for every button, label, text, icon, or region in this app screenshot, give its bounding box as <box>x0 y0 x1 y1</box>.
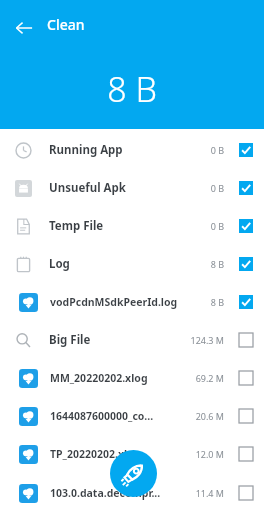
button[interactable]: vodPcdnMSdkPeerId.log <box>0 283 264 321</box>
staticText: 124.3 M <box>190 334 224 346</box>
button[interactable]: Unsueful Apk <box>0 169 264 207</box>
staticText: Temp File <box>49 218 206 234</box>
staticText: 12.0 M <box>195 448 224 460</box>
button[interactable]: Big File <box>0 321 264 359</box>
staticText: 11.4 M <box>195 487 224 499</box>
staticText: 69.2 M <box>195 372 224 384</box>
button[interactable]: Not selected <box>234 404 258 428</box>
button[interactable]: Selected <box>234 290 258 314</box>
button[interactable]: Clean now <box>110 450 157 497</box>
button[interactable]: Selected <box>234 138 258 162</box>
button[interactable]: 103.0.data.decompr... <box>0 473 264 512</box>
button[interactable]: Back <box>8 12 40 44</box>
button[interactable]: Running App <box>0 131 264 169</box>
button[interactable]: Selected <box>234 252 258 276</box>
button[interactable]: Selected <box>234 176 258 200</box>
staticText: Big File <box>49 332 186 348</box>
staticText: TP_20220202.xlog <box>50 447 191 461</box>
staticText: 20.6 M <box>195 410 224 422</box>
button[interactable]: Selected <box>234 214 258 238</box>
button[interactable]: Not selected <box>234 481 258 505</box>
staticText: 8 B <box>210 258 224 270</box>
button[interactable]: Not selected <box>234 366 258 390</box>
staticText: Log <box>49 256 206 272</box>
staticText: 8 B <box>107 66 157 112</box>
button[interactable]: MM_20220202.xlog <box>0 359 264 397</box>
staticText: Unsueful Apk <box>49 180 206 196</box>
staticText: 0 B <box>210 182 224 194</box>
staticText: Running App <box>49 142 206 158</box>
staticText: 103.0.data.decompr... <box>50 486 191 500</box>
button[interactable]: 1644087600000_co... <box>0 397 264 435</box>
staticText: MM_20220202.xlog <box>50 371 191 385</box>
button[interactable]: Log <box>0 245 264 283</box>
button[interactable]: Not selected <box>234 328 258 352</box>
staticText: vodPcdnMSdkPeerId.log <box>50 295 206 309</box>
staticText: 0 B <box>210 220 224 232</box>
staticText: 8 B <box>210 296 224 308</box>
button[interactable]: TP_20220202.xlog <box>0 435 264 473</box>
button[interactable]: Temp File <box>0 207 264 245</box>
staticText: Clean <box>47 15 85 34</box>
button[interactable]: Not selected <box>234 442 258 466</box>
staticText: 1644087600000_co... <box>50 409 191 423</box>
staticText: 0 B <box>210 144 224 156</box>
